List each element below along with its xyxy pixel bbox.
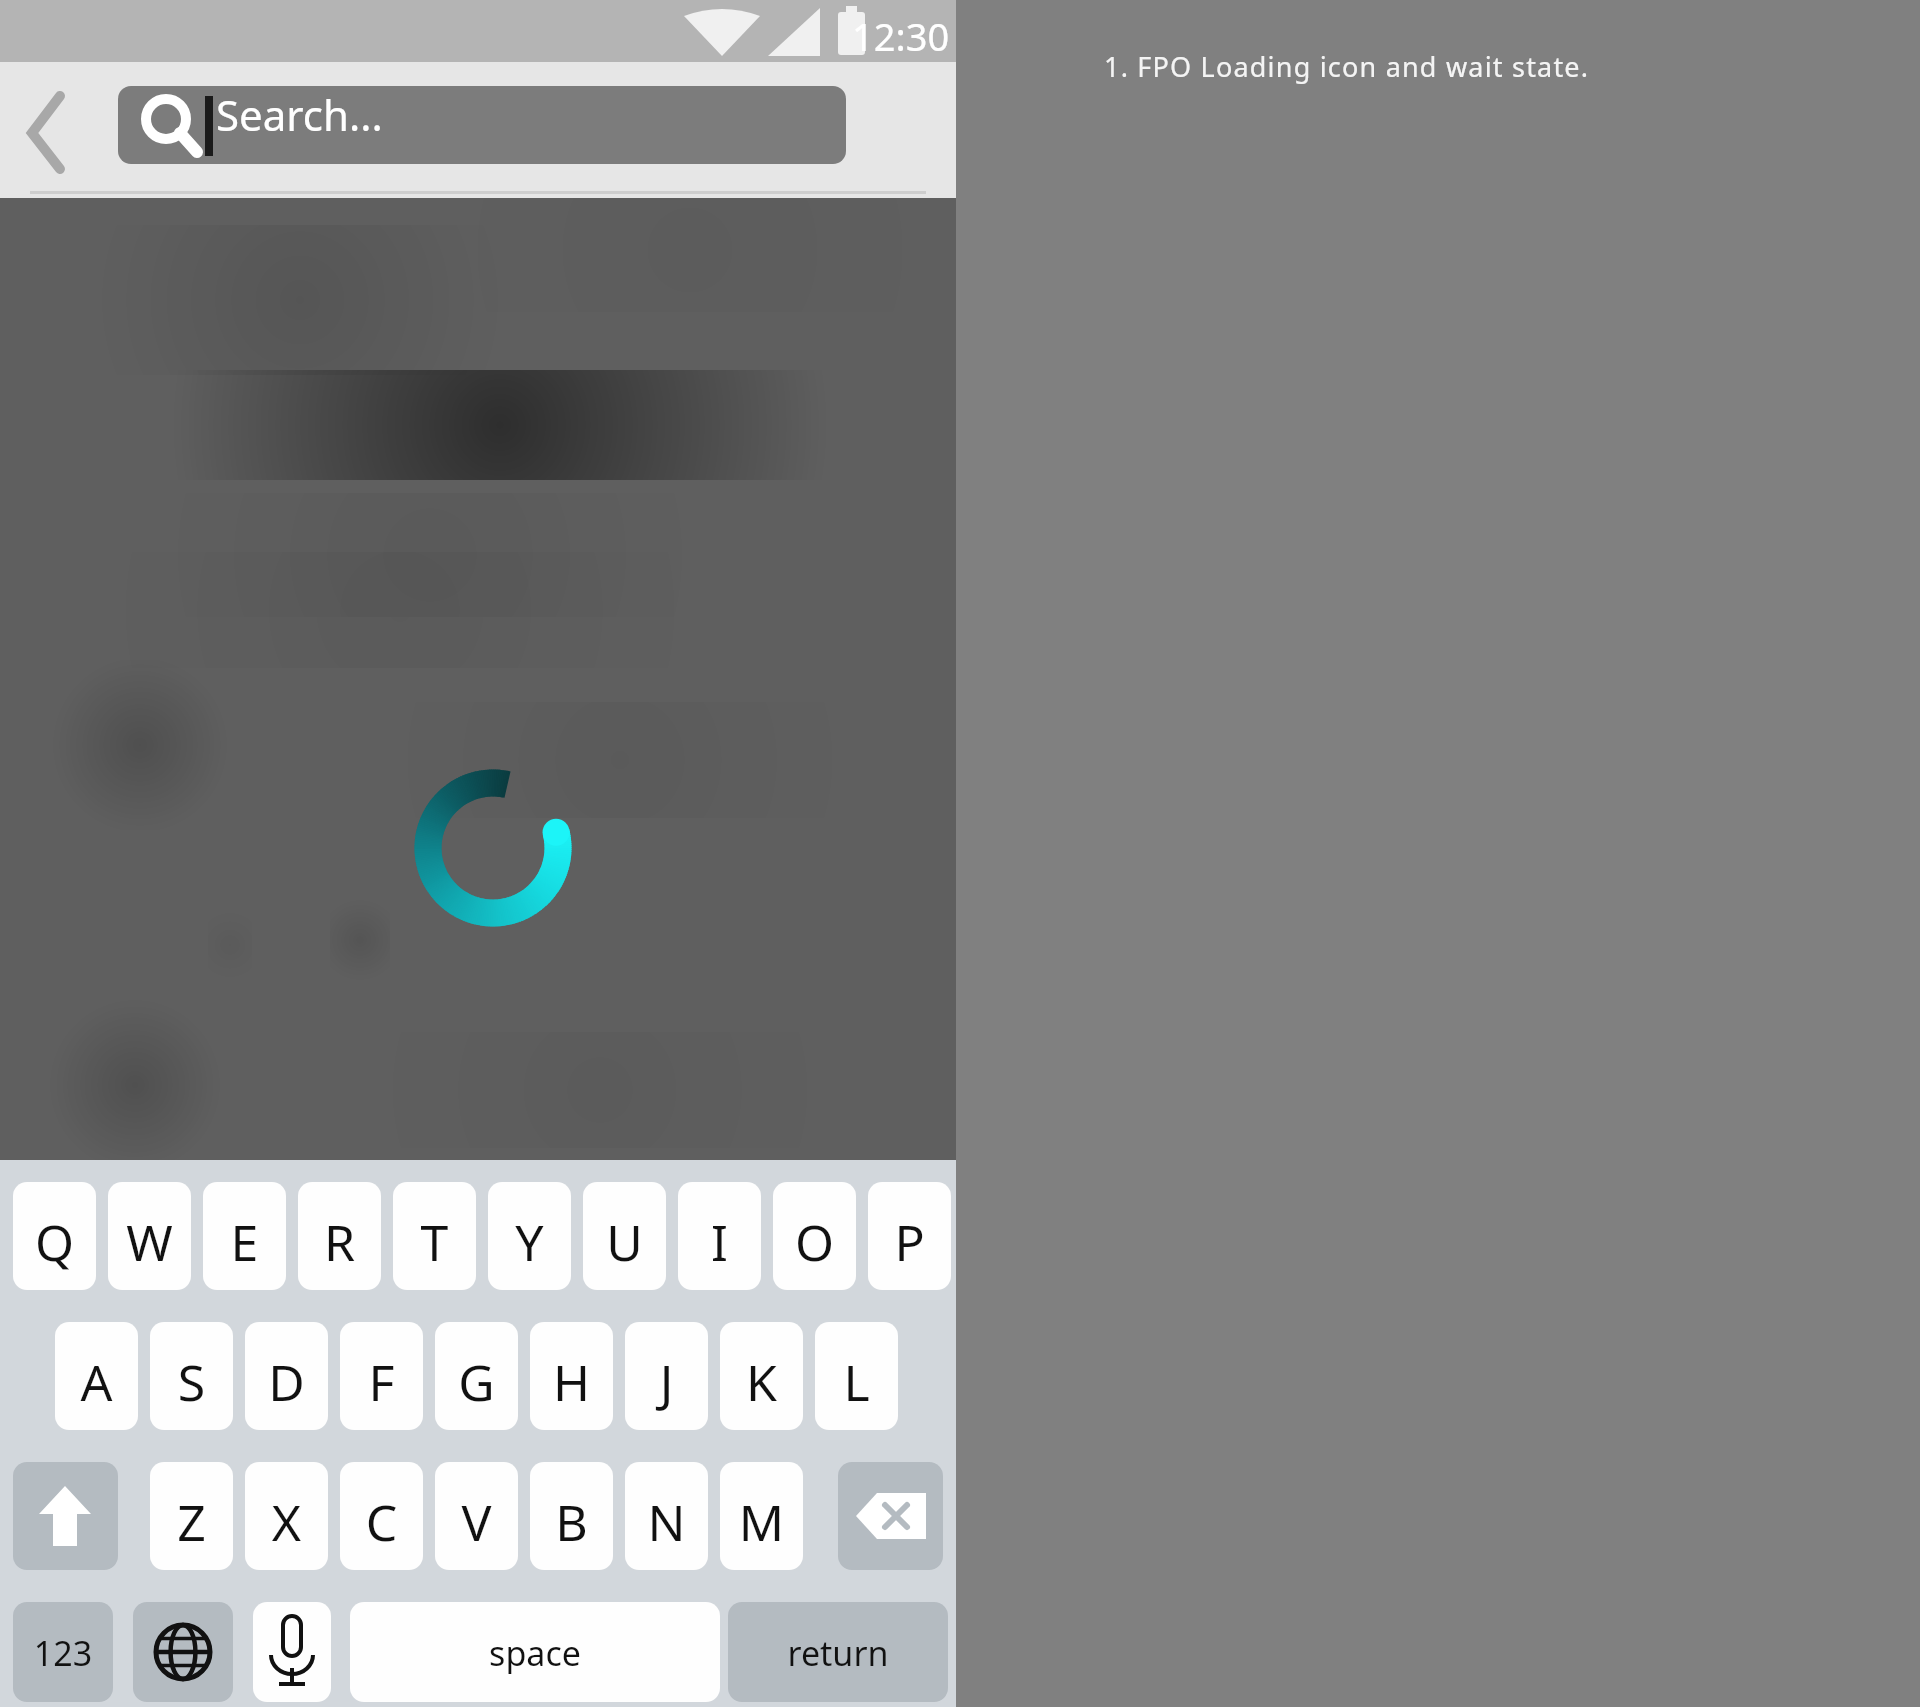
staticText: return <box>728 1630 948 1676</box>
staticText: F <box>340 1348 423 1416</box>
staticText: T <box>393 1208 476 1276</box>
staticText: A <box>55 1348 138 1416</box>
staticText: K <box>720 1348 803 1416</box>
staticText: W <box>108 1208 191 1276</box>
button[interactable]: Numbers <box>13 1602 113 1702</box>
button[interactable]: Change language <box>133 1602 233 1702</box>
staticText: R <box>298 1208 381 1276</box>
button[interactable]: I <box>678 1182 761 1290</box>
button[interactable]: B <box>530 1462 613 1570</box>
staticText: Z <box>150 1488 233 1556</box>
staticText: N <box>625 1488 708 1556</box>
button[interactable]: G <box>435 1322 518 1430</box>
staticText: P <box>868 1208 951 1276</box>
staticText: Search... <box>216 86 383 143</box>
button[interactable]: J <box>625 1322 708 1430</box>
button[interactable]: R <box>298 1182 381 1290</box>
button[interactable]: P <box>868 1182 951 1290</box>
button[interactable]: C <box>340 1462 423 1570</box>
button[interactable]: Y <box>488 1182 571 1290</box>
button[interactable]: Search <box>118 86 846 164</box>
staticText: E <box>203 1208 286 1276</box>
button[interactable]: D <box>245 1322 328 1430</box>
button[interactable]: return <box>728 1602 948 1702</box>
staticText: O <box>773 1208 856 1276</box>
staticText: 1. FPO Loading icon and wait state. <box>1104 48 1590 85</box>
staticText: X <box>245 1488 328 1556</box>
button[interactable]: Back <box>10 78 92 160</box>
button[interactable]: Q <box>13 1182 96 1290</box>
button[interactable]: S <box>150 1322 233 1430</box>
button[interactable]: X <box>245 1462 328 1570</box>
button[interactable]: F <box>340 1322 423 1430</box>
staticText: Q <box>13 1208 96 1276</box>
staticText: 123 <box>13 1630 113 1676</box>
staticText: U <box>583 1208 666 1276</box>
staticText: B <box>530 1488 613 1556</box>
button[interactable]: Backspace <box>838 1462 943 1570</box>
button[interactable]: Voice input <box>253 1602 331 1702</box>
button[interactable]: H <box>530 1322 613 1430</box>
staticText: Y <box>488 1208 571 1276</box>
staticText: V <box>435 1488 518 1556</box>
staticText: H <box>530 1348 613 1416</box>
button[interactable]: A <box>55 1322 138 1430</box>
staticText: space <box>350 1630 720 1676</box>
button[interactable]: K <box>720 1322 803 1430</box>
button[interactable]: U <box>583 1182 666 1290</box>
staticText: 12:30 <box>852 10 950 62</box>
button[interactable]: V <box>435 1462 518 1570</box>
staticText: D <box>245 1348 328 1416</box>
button[interactable]: Z <box>150 1462 233 1570</box>
button[interactable]: Shift <box>13 1462 118 1570</box>
button[interactable]: O <box>773 1182 856 1290</box>
button[interactable]: T <box>393 1182 476 1290</box>
button[interactable]: N <box>625 1462 708 1570</box>
button[interactable]: M <box>720 1462 803 1570</box>
staticText: I <box>678 1208 761 1276</box>
staticText: G <box>435 1348 518 1416</box>
staticText: C <box>340 1488 423 1556</box>
staticText: S <box>150 1348 233 1416</box>
staticText: J <box>625 1348 708 1416</box>
button[interactable]: L <box>815 1322 898 1430</box>
staticText: M <box>720 1488 803 1556</box>
button[interactable]: E <box>203 1182 286 1290</box>
staticText: L <box>815 1348 898 1416</box>
button[interactable]: W <box>108 1182 191 1290</box>
button[interactable]: space <box>350 1602 720 1702</box>
